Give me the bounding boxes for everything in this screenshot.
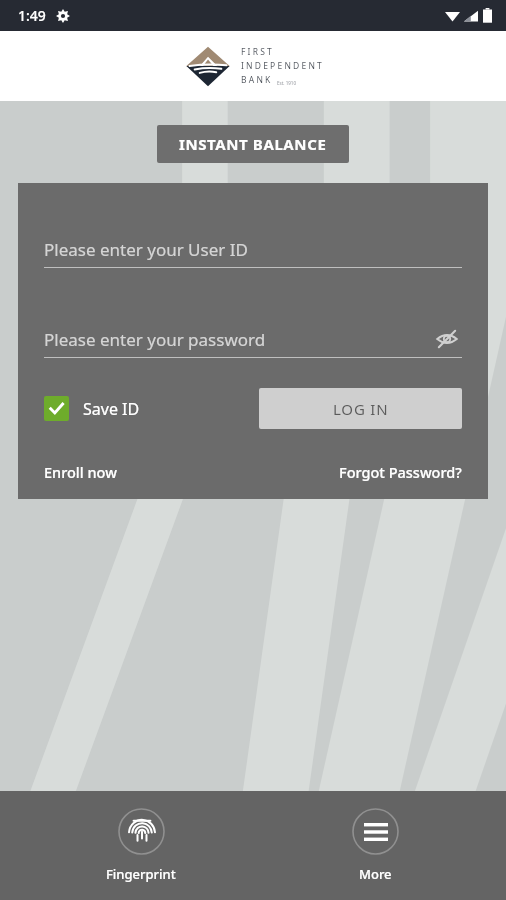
staticText: Forgot Password?: [339, 462, 462, 482]
staticText: Est. 1910: [277, 80, 296, 86]
button[interactable]: Please enter your User ID: [44, 231, 462, 267]
button[interactable]: Show password: [432, 324, 462, 354]
staticText: F I R S T: [241, 46, 272, 58]
staticText: LOG IN: [333, 399, 389, 419]
staticText: Enroll now: [44, 462, 117, 482]
staticText: B A N K: [241, 74, 271, 86]
button[interactable]: LOG IN: [259, 388, 462, 429]
button[interactable]: Please enter your password: [44, 321, 462, 357]
staticText: INSTANT BALANCE: [179, 134, 327, 154]
staticText: I N D E P E N D E N T: [241, 60, 322, 72]
staticText: More: [359, 865, 392, 883]
button[interactable]: INSTANT BALANCE: [157, 125, 349, 163]
staticText: Save ID: [83, 398, 140, 420]
button[interactable]: Enroll now: [44, 460, 117, 484]
button[interactable]: Save ID: [44, 396, 140, 421]
staticText: Please enter your password: [44, 328, 432, 351]
staticText: Please enter your User ID: [44, 238, 248, 261]
staticText: 1:49: [18, 6, 46, 25]
button[interactable]: More: [342, 802, 409, 889]
staticText: Fingerprint: [106, 865, 176, 883]
button[interactable]: Forgot Password?: [339, 460, 462, 484]
button[interactable]: Fingerprint: [96, 802, 186, 889]
